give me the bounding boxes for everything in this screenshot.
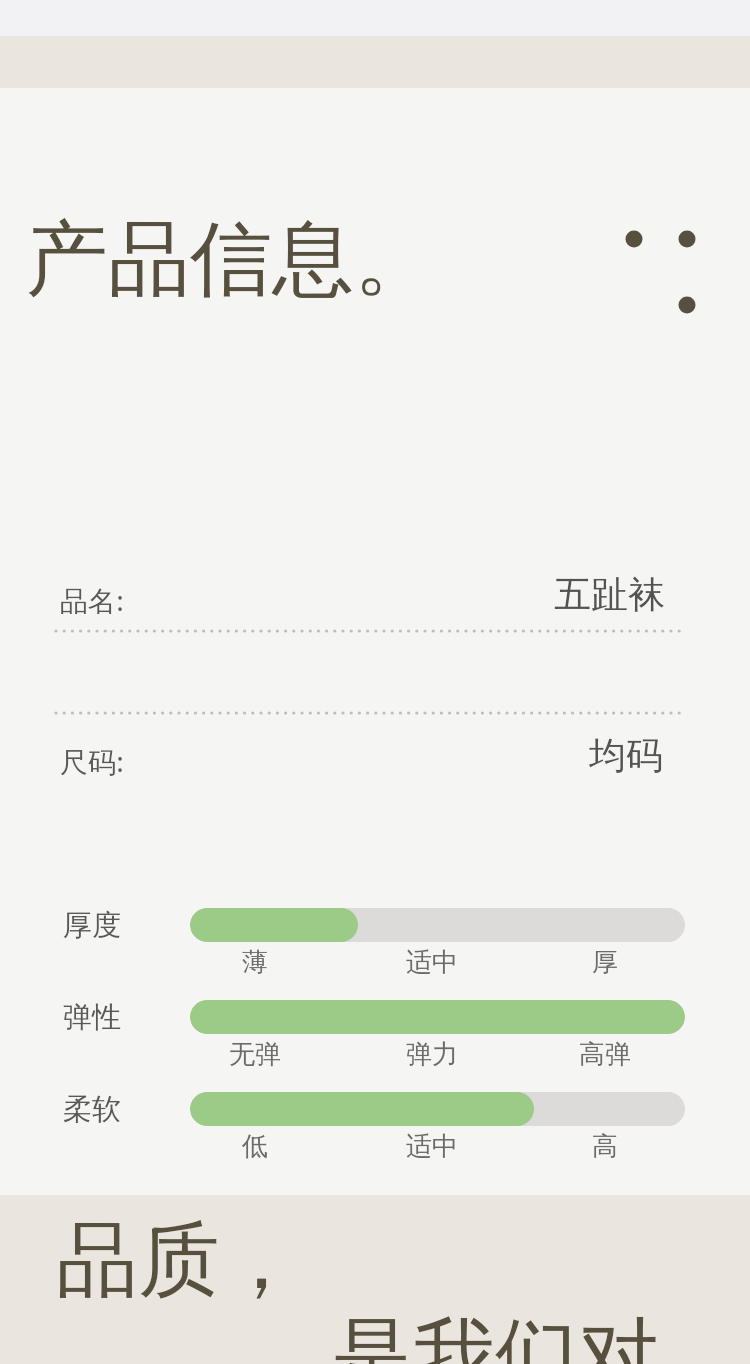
staticText: 厚度 [63, 907, 121, 944]
staticText: 高 [555, 1130, 655, 1163]
staticText: 五趾袜 [0, 571, 665, 618]
staticText: 品名: [60, 581, 125, 619]
staticText: 弹力 [382, 1038, 482, 1071]
button[interactable] [190, 1000, 685, 1034]
staticText: 均码 [0, 732, 663, 779]
staticText: 无弹 [205, 1038, 305, 1071]
staticText: 是我们对 [331, 1305, 659, 1364]
button[interactable] [190, 908, 685, 942]
button[interactable]: 尺码: [0, 726, 750, 796]
staticText: 适中 [382, 946, 482, 979]
button[interactable] [190, 1092, 685, 1126]
button[interactable]: 品名: [0, 565, 750, 635]
staticText: 柔软 [63, 1091, 121, 1128]
staticText: 品质， [56, 1209, 302, 1312]
staticText: 高弹 [555, 1038, 655, 1071]
button[interactable]: 更多选项 [608, 212, 716, 328]
staticText: 薄 [205, 946, 305, 979]
staticText: 产品信息。 [26, 208, 436, 311]
staticText: 尺码: [60, 742, 125, 780]
staticText: 弹性 [63, 999, 121, 1036]
staticText: 低 [205, 1130, 305, 1163]
staticText: 适中 [382, 1130, 482, 1163]
staticText: 厚 [555, 946, 655, 979]
